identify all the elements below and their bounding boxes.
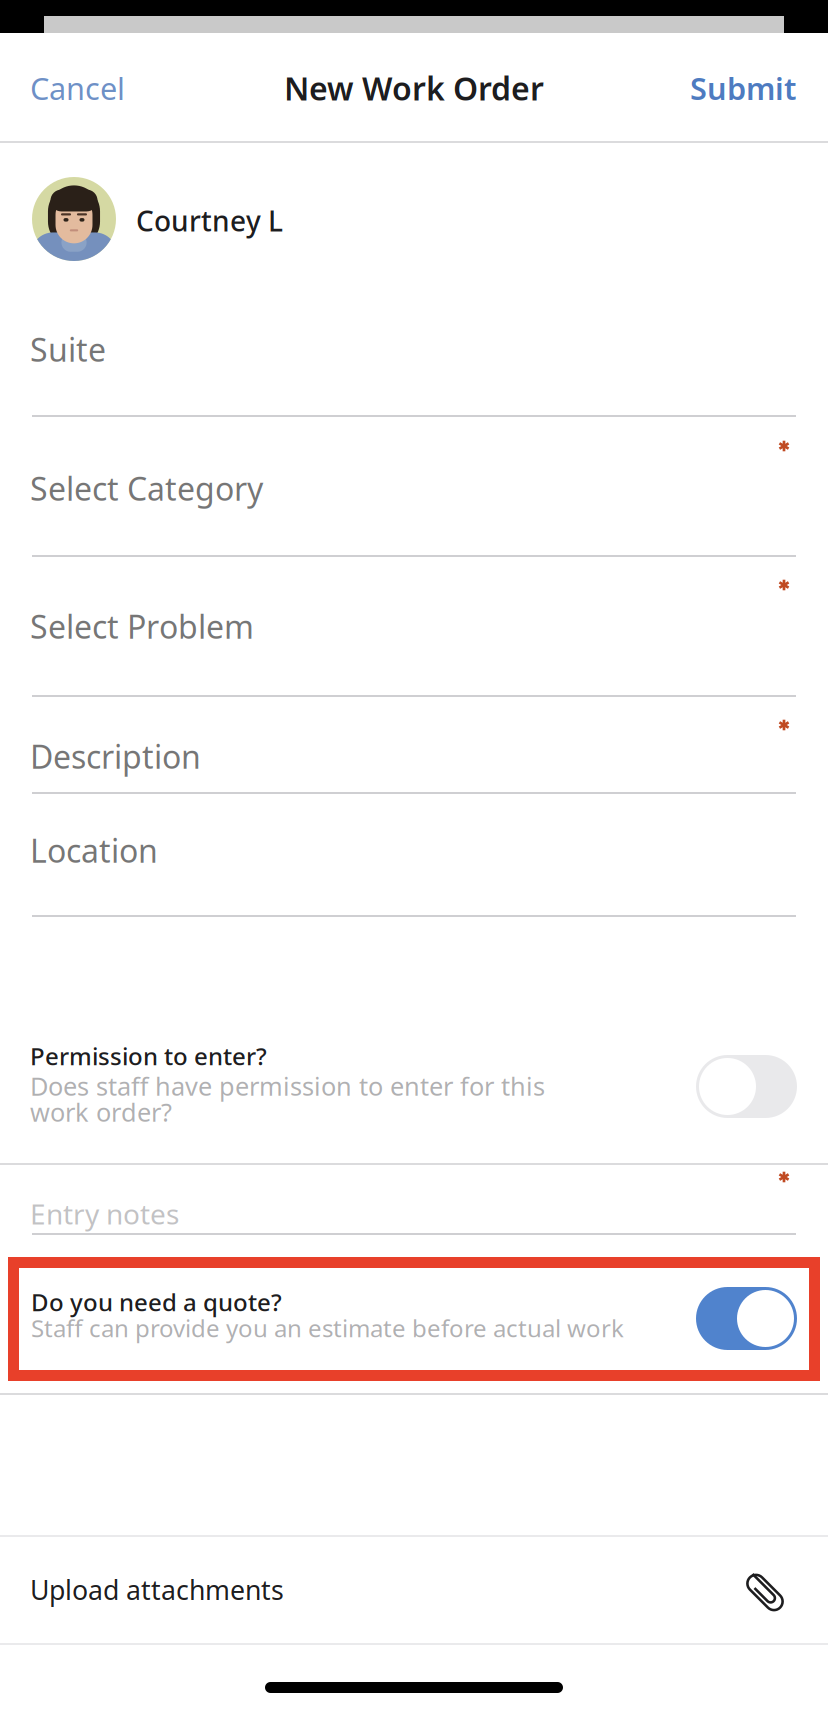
button[interactable]: Submit [616,48,828,128]
staticText: Cancel [30,68,125,108]
button[interactable]: Do you need a quote? [8,1257,820,1381]
staticText: Select Category [30,467,263,509]
staticText: work order? [30,1095,172,1129]
staticText: Submit [690,68,796,108]
button[interactable]: Cancel [0,48,190,128]
staticText: Staff can provide you an estimate before… [31,1312,624,1344]
button[interactable]: Permission to enter [696,1055,797,1118]
staticText: Location [30,829,158,871]
staticText: Upload attachments [30,1572,284,1607]
staticText: Do you need a quote? [31,1286,282,1318]
staticText: Suite [30,328,106,370]
staticText: New Work Order [284,67,544,109]
staticText: Select Problem [30,605,254,647]
button[interactable]: Upload attachments [0,1535,828,1645]
staticText: Permission to enter? [30,1040,267,1072]
staticText: Entry notes [30,1195,179,1232]
staticText: Courtney L [136,202,283,239]
staticText: Does staff have permission to enter for … [30,1069,545,1103]
staticText: Description [30,735,201,777]
